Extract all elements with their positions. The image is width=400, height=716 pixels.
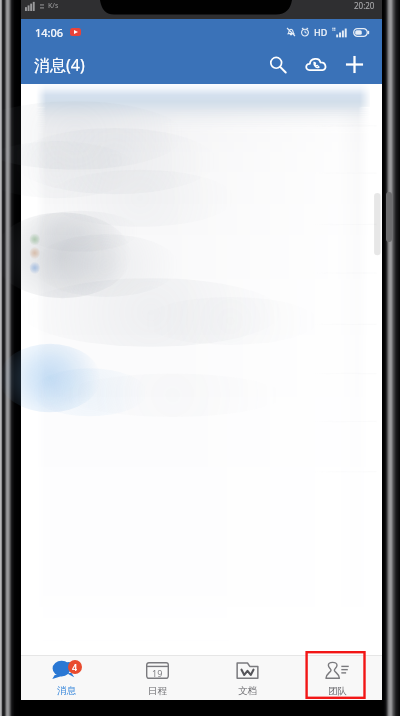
staticText: 团队 xyxy=(328,685,347,697)
button[interactable]: 4 xyxy=(21,656,112,700)
staticText: 19 xyxy=(152,667,163,679)
staticText: 14:06 xyxy=(35,25,64,40)
staticText: 文档 xyxy=(238,685,257,697)
staticText: HD xyxy=(314,26,328,38)
button[interactable]: 文档 xyxy=(202,656,292,700)
staticText: 20:20 xyxy=(354,0,375,11)
button[interactable]: Add xyxy=(335,45,373,84)
button[interactable]: 团队 xyxy=(292,656,382,700)
staticText: 4 xyxy=(72,661,78,673)
staticText: 消息(4) xyxy=(34,54,85,76)
staticText: 消息 xyxy=(57,685,76,697)
button[interactable]: Cloud call xyxy=(297,45,335,84)
button[interactable]: Search xyxy=(259,45,297,84)
staticText: 日程 xyxy=(148,685,167,697)
button[interactable]: 19 xyxy=(112,656,202,700)
staticText: K/s xyxy=(48,1,59,11)
